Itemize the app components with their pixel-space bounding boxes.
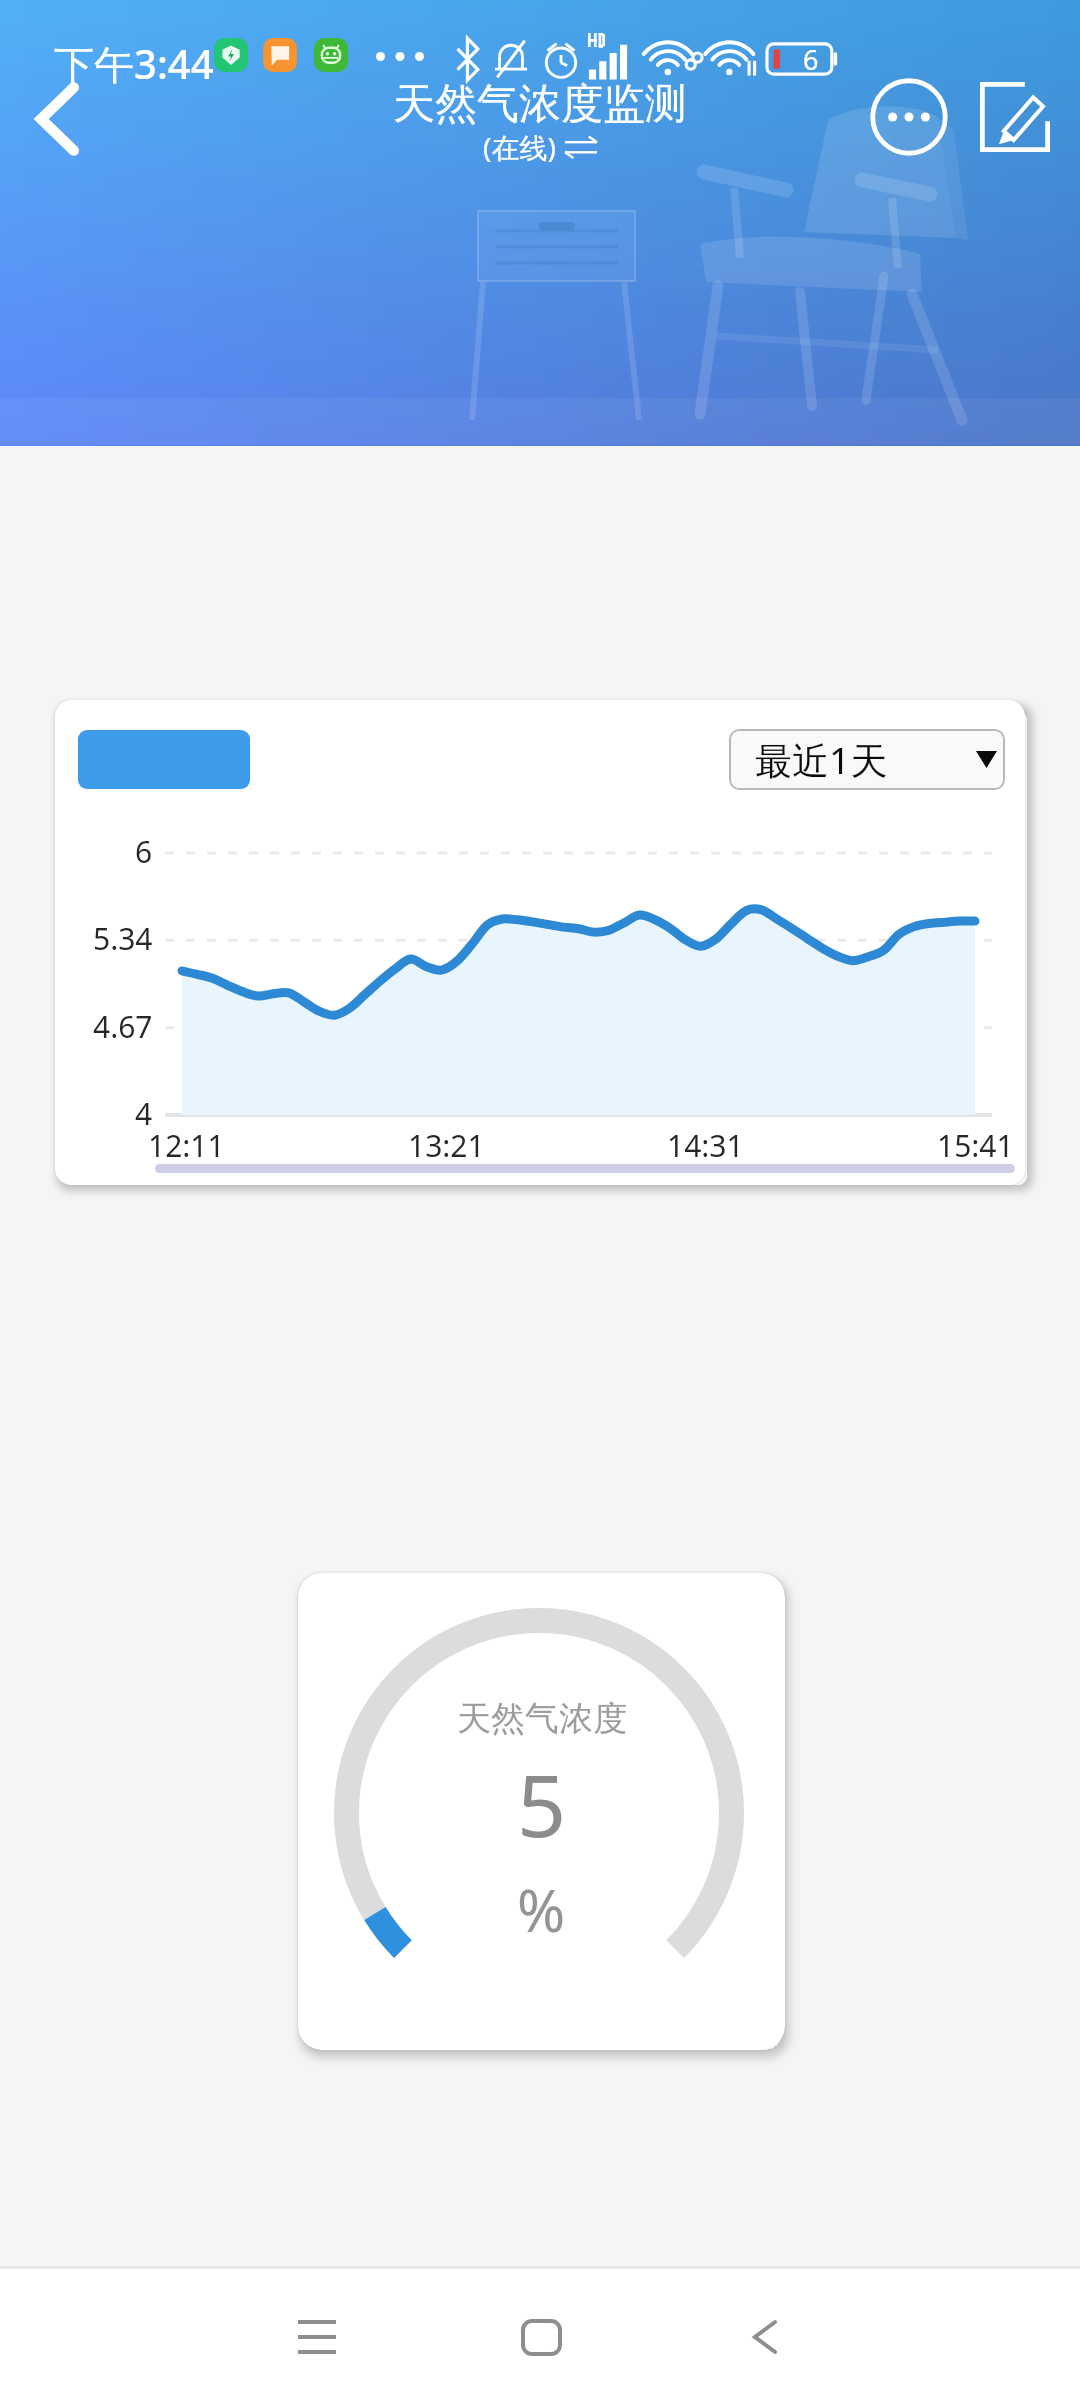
staticText: 最近1天: [755, 734, 888, 785]
staticText: 天然气浓度: [457, 1697, 627, 1740]
staticText: 12:11: [148, 1125, 225, 1166]
staticText: 6: [135, 831, 153, 872]
staticText: 5: [517, 1745, 567, 1862]
button[interactable]: Back: [710, 2282, 820, 2392]
button[interactable]: Edit: [962, 64, 1068, 170]
staticText: (在线): [483, 128, 556, 166]
staticText: %: [517, 1870, 566, 1949]
staticText: 下午3:44: [54, 36, 214, 91]
button[interactable]: Back: [4, 66, 110, 172]
button[interactable]: Chart series: [78, 730, 250, 789]
staticText: 13:21: [408, 1125, 485, 1166]
staticText: 14:31: [667, 1125, 744, 1166]
button[interactable]: More options: [856, 64, 962, 170]
button[interactable]: Recents: [262, 2282, 372, 2392]
button[interactable]: Home: [486, 2282, 596, 2392]
staticText: 4: [135, 1093, 153, 1134]
button[interactable]: 最近1天: [729, 729, 1005, 790]
staticText: 6: [803, 41, 819, 78]
staticText: 4.67: [93, 1006, 153, 1047]
staticText: 天然气浓度监测: [393, 78, 687, 131]
staticText: 5.34: [93, 918, 153, 959]
staticText: 15:41: [937, 1125, 1014, 1166]
